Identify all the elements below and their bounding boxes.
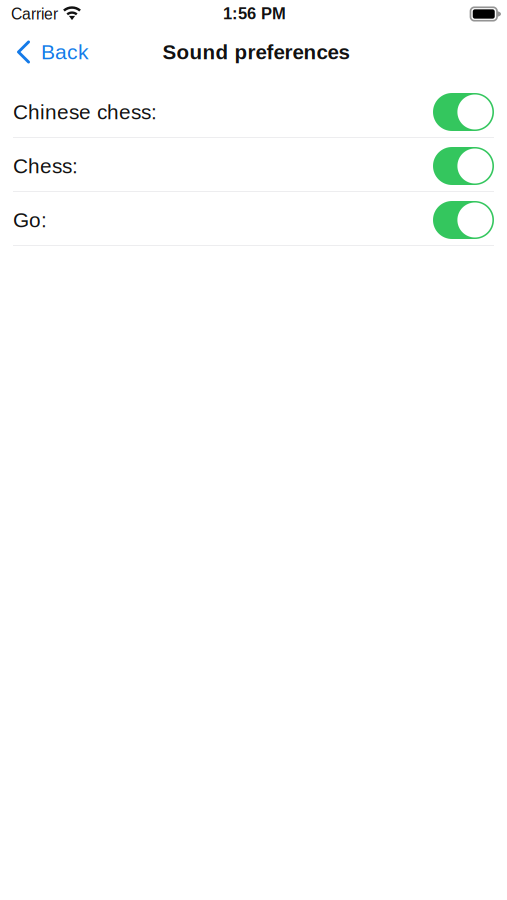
staticText: Carrier <box>11 5 58 23</box>
staticText: Chess: <box>13 154 78 178</box>
staticText: Chinese chess: <box>13 100 157 124</box>
button[interactable]: Back <box>0 28 99 72</box>
staticText: 1:56 PM <box>223 4 286 23</box>
staticText: Go: <box>13 208 47 232</box>
staticText: Sound preferences <box>162 40 349 63</box>
staticText: Back <box>41 40 89 64</box>
button[interactable]: Chinese chess: <box>0 84 507 137</box>
button[interactable]: Go: <box>0 192 507 245</box>
button[interactable]: Chess: <box>0 138 507 191</box>
